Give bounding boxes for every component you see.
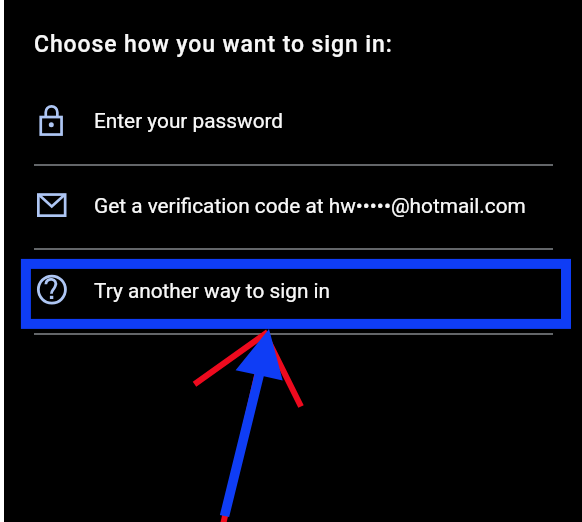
button[interactable]: Enter your password — [0, 89, 582, 152]
staticText: Try another way to sign in — [94, 279, 331, 303]
button[interactable]: Try another way to sign in — [0, 259, 582, 322]
button[interactable]: Get a verification code at hw•••••@hotma… — [0, 174, 582, 237]
staticText: Enter your password — [94, 109, 284, 133]
staticText: Choose how you want to sign in: — [34, 31, 393, 58]
staticText: Get a verification code at hw•••••@hotma… — [94, 194, 526, 218]
